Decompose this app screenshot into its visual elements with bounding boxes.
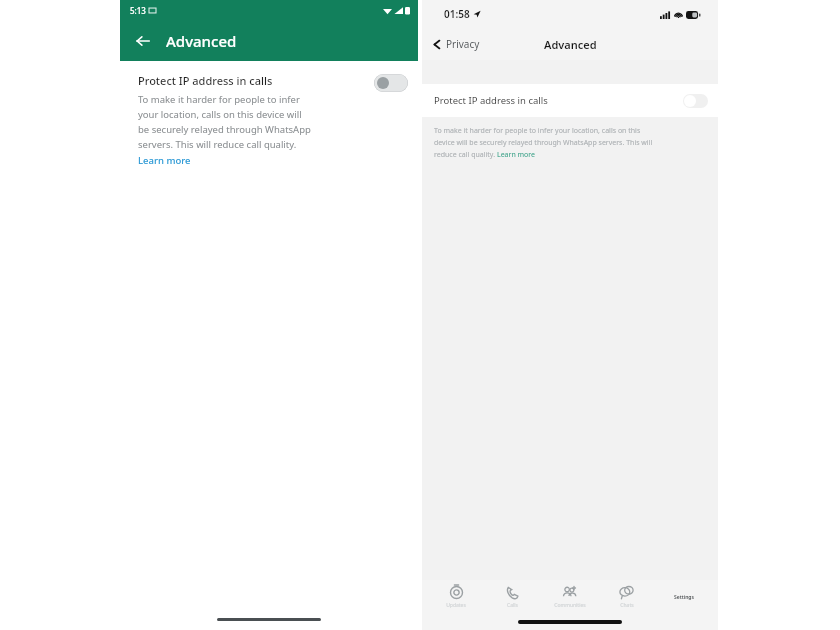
button[interactable]: Updates [428,580,484,614]
staticText: 5:13 [130,5,146,16]
button[interactable]: Calls [484,580,541,614]
staticText: device will be securely relayed through … [434,138,653,148]
staticText: Settings [674,594,694,601]
staticText: To make it harder for people to infer [138,93,300,106]
button[interactable]: Settings [655,580,712,614]
button[interactable]: Chats [598,580,655,614]
staticText: Protect IP address in calls [138,73,273,88]
staticText: Communities [554,602,586,609]
button[interactable]: Protect IP address in calls [138,73,408,167]
staticText: Updates [446,602,466,609]
staticText: 01:58 [444,7,470,21]
staticText: Advanced [166,31,237,51]
staticText: To make it harder for people to infer yo… [434,126,641,136]
staticText: servers. This will reduce call quality. [138,138,297,151]
button[interactable]: Protect IP address in calls toggle [374,74,408,92]
button[interactable]: Protect IP address in calls toggle [683,94,708,108]
staticText: Advanced [544,37,597,52]
staticText: be securely relayed through WhatsApp [138,123,311,136]
staticText: Privacy [446,37,480,51]
button[interactable]: Back [130,28,156,54]
button[interactable]: Communities [541,580,598,614]
button[interactable]: Privacy [432,37,480,51]
staticText: Chats [620,602,634,609]
button[interactable]: Learn more [497,150,536,160]
staticText: Protect IP address in calls [434,94,548,107]
staticText: Calls [507,602,518,609]
staticText: reduce call quality. [434,150,497,160]
button[interactable]: Protect IP address in calls [434,84,708,117]
staticText: your location, calls on this device will [138,108,302,121]
button[interactable]: Learn more [138,154,191,167]
